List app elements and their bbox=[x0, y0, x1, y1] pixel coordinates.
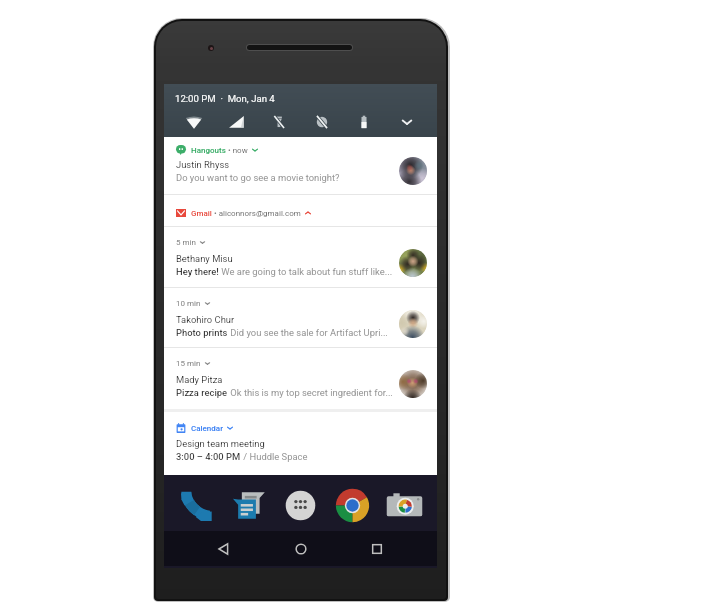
button[interactable]: Gmail bbox=[164, 194, 437, 226]
staticText: Hangouts bbox=[191, 146, 226, 155]
staticText: Justin Rhyss bbox=[176, 159, 230, 170]
button[interactable]: Phone bbox=[173, 482, 220, 529]
button[interactable]: Back bbox=[210, 535, 238, 563]
button[interactable]: Hangouts bbox=[164, 138, 437, 195]
button[interactable]: All apps bbox=[277, 482, 324, 529]
staticText: Bethany Misu bbox=[176, 253, 233, 264]
button[interactable]: Battery bbox=[352, 110, 376, 134]
button[interactable]: Auto rotate off bbox=[310, 110, 334, 134]
staticText: Takohiro Chur bbox=[176, 314, 235, 325]
button[interactable]: 15 min bbox=[164, 347, 437, 408]
staticText: 12:00 PM · Mon, Jan 4 bbox=[175, 93, 275, 104]
staticText: Photo prints bbox=[176, 327, 228, 338]
staticText: Mady Pitza bbox=[176, 374, 223, 385]
button[interactable]: Recents bbox=[363, 535, 391, 563]
staticText: We are going to talk about fun stuff lik… bbox=[219, 266, 393, 277]
button[interactable]: Wi-Fi bbox=[182, 110, 206, 134]
staticText: Design team meeting bbox=[176, 438, 265, 449]
button[interactable]: Home bbox=[287, 535, 315, 563]
button[interactable]: 5 min bbox=[164, 226, 437, 287]
staticText: Did you see the sale for Artifact Upri..… bbox=[228, 327, 388, 338]
staticText: 15 min bbox=[176, 359, 201, 368]
button[interactable]: Chrome bbox=[329, 482, 376, 529]
staticText: 5 min bbox=[176, 238, 196, 247]
staticText: Gmail bbox=[191, 209, 212, 218]
button[interactable]: Camera bbox=[381, 482, 428, 529]
staticText: • now bbox=[226, 146, 248, 155]
button[interactable]: Messages bbox=[225, 482, 272, 529]
staticText: 3:00 – 4:00 PM bbox=[176, 451, 241, 462]
staticText: Calendar bbox=[191, 424, 223, 433]
staticText: 10 min bbox=[176, 299, 201, 308]
staticText: • aliconnors@gmail.com bbox=[212, 209, 301, 218]
button[interactable]: Expand quick settings bbox=[395, 110, 419, 134]
button[interactable]: Flashlight off bbox=[267, 110, 291, 134]
staticText: Pizza recipe bbox=[176, 387, 228, 398]
button[interactable]: Calendar bbox=[164, 412, 437, 475]
staticText: Hey there! bbox=[176, 266, 219, 277]
button[interactable]: Cellular signal bbox=[225, 110, 249, 134]
staticText: Do you want to go see a movie tonight? bbox=[176, 172, 340, 183]
staticText: Ok this is my top secret ingredient for.… bbox=[228, 387, 393, 398]
staticText: / Huddle Space bbox=[241, 451, 308, 462]
button[interactable]: 10 min bbox=[164, 287, 437, 348]
